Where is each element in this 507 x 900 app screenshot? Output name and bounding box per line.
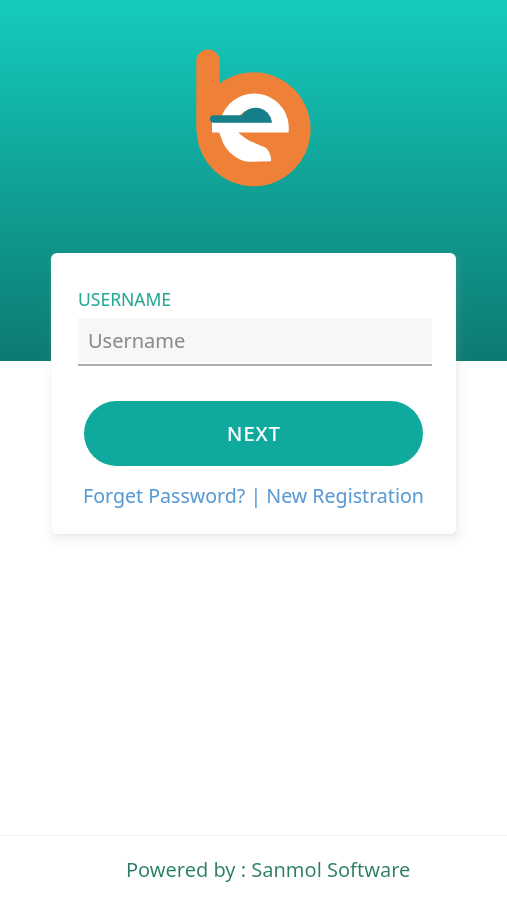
staticText: Powered by : Sanmol Software [126, 856, 411, 883]
button[interactable]: NEXT [84, 401, 423, 466]
other: App logo [196, 48, 314, 190]
button[interactable]: Forget Password? | New Registration [51, 479, 456, 511]
button[interactable]: Username [78, 318, 432, 363]
staticText: Forget Password? | New Registration [83, 482, 424, 509]
staticText: Username [88, 327, 186, 354]
staticText: NEXT [227, 420, 281, 447]
staticText: USERNAME [78, 287, 172, 311]
